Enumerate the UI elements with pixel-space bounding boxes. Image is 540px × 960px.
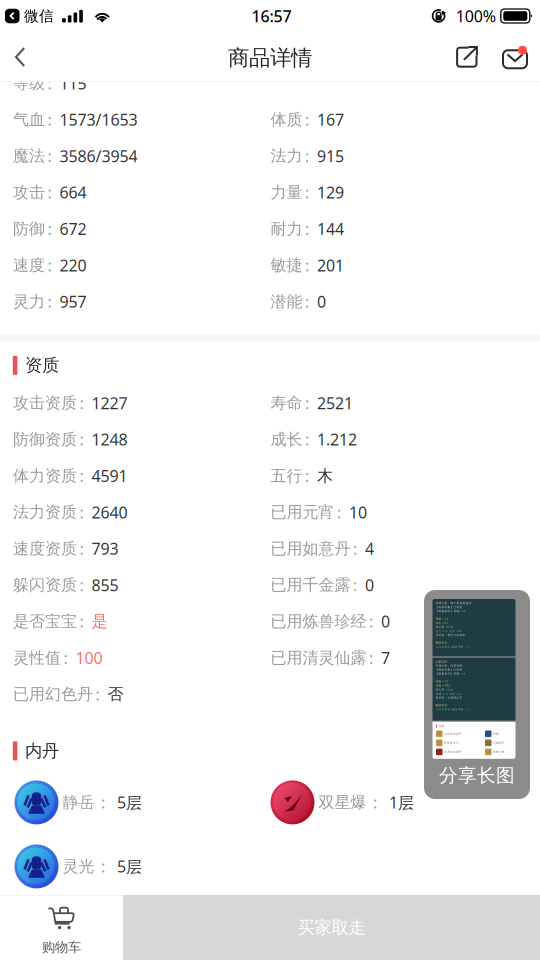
- staticText: 攻击资质: [13, 393, 77, 413]
- staticText: 魔法: [13, 146, 45, 166]
- staticText: 220: [59, 255, 86, 276]
- staticText: 潜能: [270, 292, 302, 311]
- staticText: 攻击: [13, 183, 45, 202]
- staticText: 【装备条件】等级115: [435, 609, 465, 613]
- staticText: 七星宝甲: [435, 660, 447, 663]
- staticText: 气血: [13, 110, 45, 129]
- staticText: :: [47, 73, 51, 94]
- staticText: 木: [317, 466, 333, 486]
- staticText: 1573/1653: [59, 109, 137, 130]
- staticText: :: [47, 109, 51, 130]
- staticText: 灵力 +15 命中 +40: [435, 629, 462, 633]
- button[interactable]: 分享长图: [424, 590, 530, 799]
- staticText: 1.212: [317, 429, 357, 450]
- staticText: 915: [317, 145, 344, 167]
- staticText: 内丹: [25, 740, 59, 762]
- staticText: :: [305, 182, 309, 203]
- staticText: 购物车: [42, 939, 81, 955]
- staticText: 855: [91, 574, 118, 596]
- staticText: :: [47, 291, 51, 312]
- staticText: 制造者：笔尖下的城市: [435, 634, 465, 637]
- staticText: 防御 +102: [435, 684, 450, 687]
- staticText: 闪避提升: [493, 741, 505, 744]
- staticText: 100: [75, 647, 102, 668]
- staticText: :: [305, 291, 309, 312]
- staticText: +32月亮石 镶嵌等级：3: [435, 707, 468, 711]
- staticText: 201: [317, 255, 344, 276]
- staticText: 100%: [456, 5, 496, 27]
- button[interactable]: 购物车: [0, 895, 123, 960]
- staticText: 【装备对象】已特意: [435, 605, 462, 609]
- staticText: 否: [107, 684, 123, 704]
- button[interactable]: 返回: [0, 34, 40, 80]
- staticText: 灵光: [62, 857, 94, 876]
- staticText: 寿命: [270, 393, 302, 413]
- staticText: 躲闪资质: [13, 575, 77, 595]
- staticText: :: [47, 255, 51, 276]
- staticText: :: [353, 574, 357, 596]
- staticText: 攻击 +37: [435, 621, 448, 625]
- staticText: 10: [349, 502, 367, 523]
- staticText: +24太阳石 镶嵌等级：4: [435, 645, 468, 648]
- staticText: 华雄七星，城下更别的道理。: [435, 601, 474, 605]
- staticText: :: [79, 611, 83, 632]
- staticText: :: [63, 647, 67, 668]
- staticText: :: [47, 182, 51, 203]
- staticText: 是否宝宝: [13, 612, 77, 631]
- staticText: 4: [365, 538, 374, 559]
- staticText: 4591: [91, 465, 127, 486]
- staticText: :: [79, 574, 83, 596]
- staticText: 5层: [117, 856, 142, 877]
- staticText: 灵力: [13, 292, 45, 311]
- staticText: 微信: [24, 7, 54, 25]
- staticText: 已用清灵仙露: [270, 648, 366, 668]
- staticText: 甲魂七星，内灵造黑。: [435, 664, 465, 667]
- staticText: 0: [317, 291, 326, 312]
- button[interactable]: 消息: [493, 34, 537, 80]
- staticText: 1227: [91, 392, 127, 414]
- staticText: :: [305, 255, 309, 276]
- staticText: 双星爆: [318, 793, 366, 812]
- staticText: :: [305, 429, 309, 450]
- staticText: 灵性值: [13, 648, 61, 668]
- button[interactable]: 买家取走: [123, 895, 540, 960]
- staticText: :: [369, 647, 373, 668]
- staticText: :: [79, 502, 83, 523]
- staticText: 已用炼兽珍经: [270, 612, 366, 631]
- staticText: 法力: [270, 146, 302, 166]
- staticText: 1248: [91, 429, 127, 450]
- staticText: 制造者：小南阳山主: [435, 696, 462, 699]
- staticText: 耐久度 1014: [435, 625, 453, 629]
- staticText: 法术抗性提升: [444, 750, 462, 754]
- staticText: 买家取走: [297, 917, 365, 938]
- staticText: :: [305, 218, 309, 239]
- staticText: 内丹: [438, 724, 444, 728]
- staticText: 力量: [270, 183, 302, 202]
- staticText: 商品详情: [228, 45, 312, 71]
- staticText: :: [369, 611, 373, 632]
- staticText: 资质: [25, 355, 59, 376]
- staticText: 等级 115: [435, 617, 448, 620]
- staticText: 敏捷 +18 连击 +25: [435, 692, 462, 695]
- staticText: 已用幻色丹: [13, 684, 93, 704]
- staticText: 体力资质: [13, 466, 77, 486]
- button[interactable]: 分享: [441, 34, 493, 80]
- staticText: 镶嵌宝石: [435, 641, 447, 644]
- staticText: :: [305, 392, 309, 414]
- staticText: :: [47, 218, 51, 239]
- staticText: 2521: [317, 392, 353, 414]
- staticText: 7: [381, 647, 390, 668]
- staticText: 耐久度 1045: [435, 688, 453, 691]
- staticText: 防御: [493, 732, 499, 735]
- staticText: 957: [59, 291, 86, 312]
- staticText: :: [353, 538, 357, 559]
- staticText: 精神力量: [493, 750, 505, 754]
- staticText: 5层: [117, 792, 142, 813]
- staticText: 耐力: [270, 219, 302, 239]
- staticText: :: [305, 109, 309, 130]
- staticText: 0: [381, 611, 390, 632]
- staticText: 672: [59, 218, 86, 239]
- staticText: 镶嵌宝石: [435, 703, 447, 707]
- staticText: 16:57: [251, 5, 291, 27]
- staticText: :: [305, 145, 309, 167]
